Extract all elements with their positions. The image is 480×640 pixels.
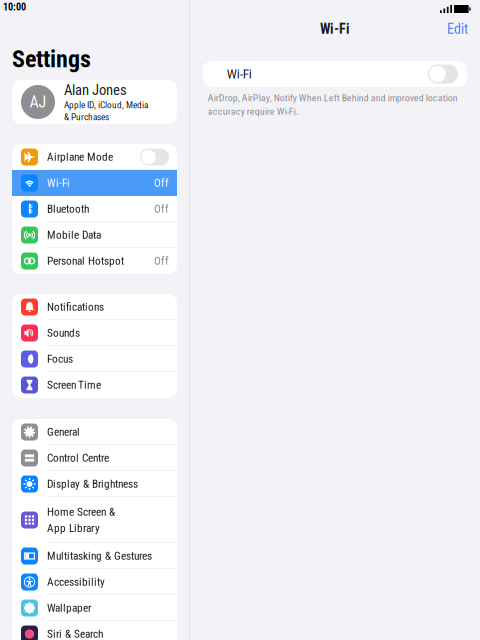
staticText: Home Screen & (47, 505, 115, 518)
button[interactable]: Wi-Fi (203, 61, 467, 87)
staticText: Notifications (47, 300, 104, 314)
staticText: Multitasking & Gestures (47, 549, 152, 563)
staticText: Wi-Fi (47, 176, 70, 190)
button[interactable]: Bluetooth (12, 196, 177, 222)
staticText: General (47, 425, 80, 439)
button[interactable]: Home Screen & (12, 497, 177, 543)
staticText: accuracy require Wi-Fi. (208, 106, 299, 117)
button[interactable]: Personal Hotspot (12, 248, 177, 274)
button[interactable]: Control Centre (12, 445, 177, 471)
button[interactable]: Screen Time (12, 372, 177, 398)
staticText: Accessibility (47, 575, 105, 589)
staticText: Screen Time (47, 378, 101, 392)
button[interactable]: Wallpaper (12, 595, 177, 621)
staticText: Alan Jones (64, 81, 127, 99)
staticText: Wi-Fi (227, 66, 252, 82)
staticText: 10:00 (3, 1, 26, 13)
button[interactable]: Airplane Mode (12, 144, 177, 170)
button[interactable]: Wi-Fi (12, 170, 177, 196)
staticText: Wi-Fi (320, 21, 350, 37)
staticText: AJ (29, 93, 46, 111)
staticText: Control Centre (47, 451, 109, 465)
staticText: Bluetooth (47, 202, 89, 216)
staticText: Mobile Data (47, 228, 101, 242)
button[interactable]: Mobile Data (12, 222, 177, 248)
staticText: App Library (47, 521, 100, 535)
button[interactable]: Notifications (12, 294, 177, 320)
staticText: Wallpaper (47, 601, 91, 615)
staticText: Sounds (47, 326, 80, 340)
staticText: Airplane Mode (47, 150, 113, 164)
staticText: Siri & Search (47, 627, 103, 640)
staticText: Settings (12, 45, 91, 73)
staticText: Off (154, 202, 169, 216)
staticText: Edit (447, 21, 468, 37)
staticText: Focus (47, 352, 73, 366)
staticText: Off (154, 176, 169, 190)
staticText: Personal Hotspot (47, 254, 124, 268)
button[interactable]: Sounds (12, 320, 177, 346)
button[interactable]: Edit (447, 21, 468, 37)
button[interactable]: Multitasking & Gestures (12, 543, 177, 569)
staticText: AirDrop, AirPlay, Notify When Left Behin… (208, 92, 458, 104)
staticText: Off (154, 254, 169, 268)
button[interactable]: Siri & Search (12, 621, 177, 640)
button[interactable]: Display & Brightness (12, 471, 177, 497)
button[interactable]: Focus (12, 346, 177, 372)
staticText: & Purchases (64, 112, 109, 122)
staticText: Apple ID, iCloud, Media (64, 100, 148, 111)
button[interactable]: General (12, 419, 177, 445)
button[interactable]: AJ (12, 80, 177, 124)
staticText: Display & Brightness (47, 477, 138, 491)
button[interactable]: Accessibility (12, 569, 177, 595)
